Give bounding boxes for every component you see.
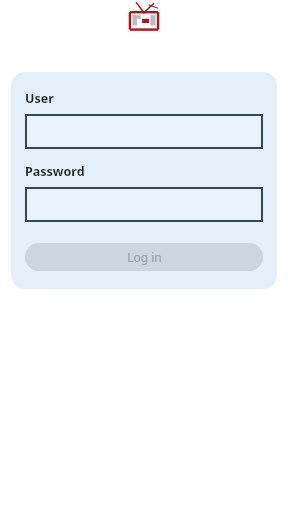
staticText: Password bbox=[25, 163, 85, 180]
staticText: Log in bbox=[127, 249, 162, 265]
button[interactable]: Log in bbox=[25, 243, 263, 271]
button[interactable] bbox=[25, 187, 263, 222]
button[interactable] bbox=[25, 114, 263, 149]
other: App logo bbox=[128, 2, 160, 32]
staticText: User bbox=[25, 90, 54, 107]
